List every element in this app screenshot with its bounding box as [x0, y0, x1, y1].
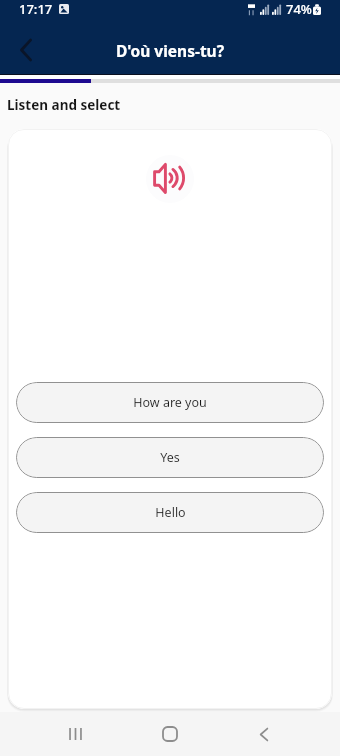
button[interactable]: Hello [16, 492, 324, 533]
button[interactable]: Yes [16, 437, 324, 478]
button[interactable]: Back [8, 32, 44, 68]
staticText: Yes [160, 449, 180, 466]
staticText: 74% [286, 0, 312, 18]
staticText: D'où viens-tu? [116, 40, 225, 61]
button[interactable]: Home [152, 716, 188, 752]
staticText: Listen and select [7, 96, 121, 114]
staticText: Hello [155, 504, 186, 521]
staticText: How are you [133, 394, 207, 411]
staticText: 17:17 [19, 0, 53, 18]
button[interactable]: Play audio [146, 155, 194, 203]
button[interactable]: Recents [57, 716, 93, 752]
button[interactable]: Back [246, 716, 282, 752]
button[interactable]: How are you [16, 382, 324, 423]
